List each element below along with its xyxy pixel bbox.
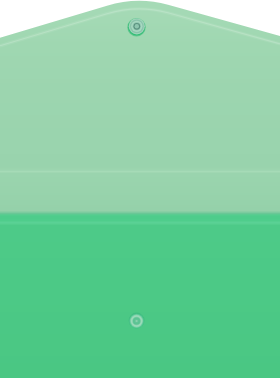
button[interactable]: Top press stud: [128, 17, 146, 35]
button[interactable]: Bottom press stud: [129, 313, 145, 329]
